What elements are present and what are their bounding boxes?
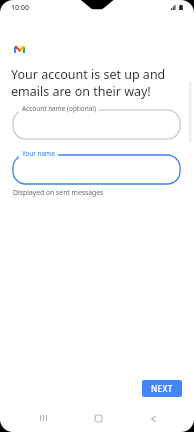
button[interactable]: Back xyxy=(139,406,167,432)
staticText: NEXT xyxy=(151,383,173,394)
staticText: Account name (optional) xyxy=(22,104,96,113)
staticText: 10:00 xyxy=(11,3,29,13)
staticText: Your account is set up and emails are on… xyxy=(11,66,180,100)
staticText: Your name xyxy=(22,149,55,158)
button[interactable]: NEXT xyxy=(142,380,182,397)
button[interactable]: Your name xyxy=(13,155,180,184)
button[interactable]: Home xyxy=(84,406,112,432)
staticText: Displayed on sent messages xyxy=(13,188,104,197)
button[interactable]: Recent apps xyxy=(29,406,57,432)
button[interactable]: Account name (optional) xyxy=(13,110,180,139)
